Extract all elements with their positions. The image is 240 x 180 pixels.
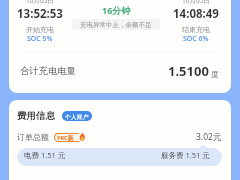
staticText: SOC 5%	[27, 34, 53, 44]
staticText: 费用信息	[17, 110, 55, 122]
button[interactable]: 个人账户	[65, 111, 89, 121]
staticText: YKC新	[57, 134, 74, 141]
staticText: 结束充电	[182, 25, 210, 34]
staticText: 订单总额	[17, 132, 49, 142]
staticText: 10月05日	[26, 0, 54, 5]
staticText: 服务费 1.51 元	[161, 150, 210, 160]
staticText: 3.02元	[196, 131, 222, 143]
staticText: 10月05日	[182, 0, 210, 5]
staticText: 开始充电	[26, 25, 54, 34]
staticText: 16分钟	[102, 4, 131, 16]
staticText: 1.5100	[168, 62, 209, 80]
staticText: 个人账户	[65, 113, 89, 120]
staticText: 充电异常中止，余额不足	[80, 21, 152, 29]
staticText: 电费 1.51 元	[24, 150, 66, 160]
staticText: 14:08:49	[173, 6, 219, 22]
staticText: 合计充电电量	[20, 65, 76, 77]
staticText: 13:52:53	[17, 6, 63, 22]
staticText: SOC 6%	[183, 34, 209, 44]
staticText: 度	[211, 70, 219, 79]
